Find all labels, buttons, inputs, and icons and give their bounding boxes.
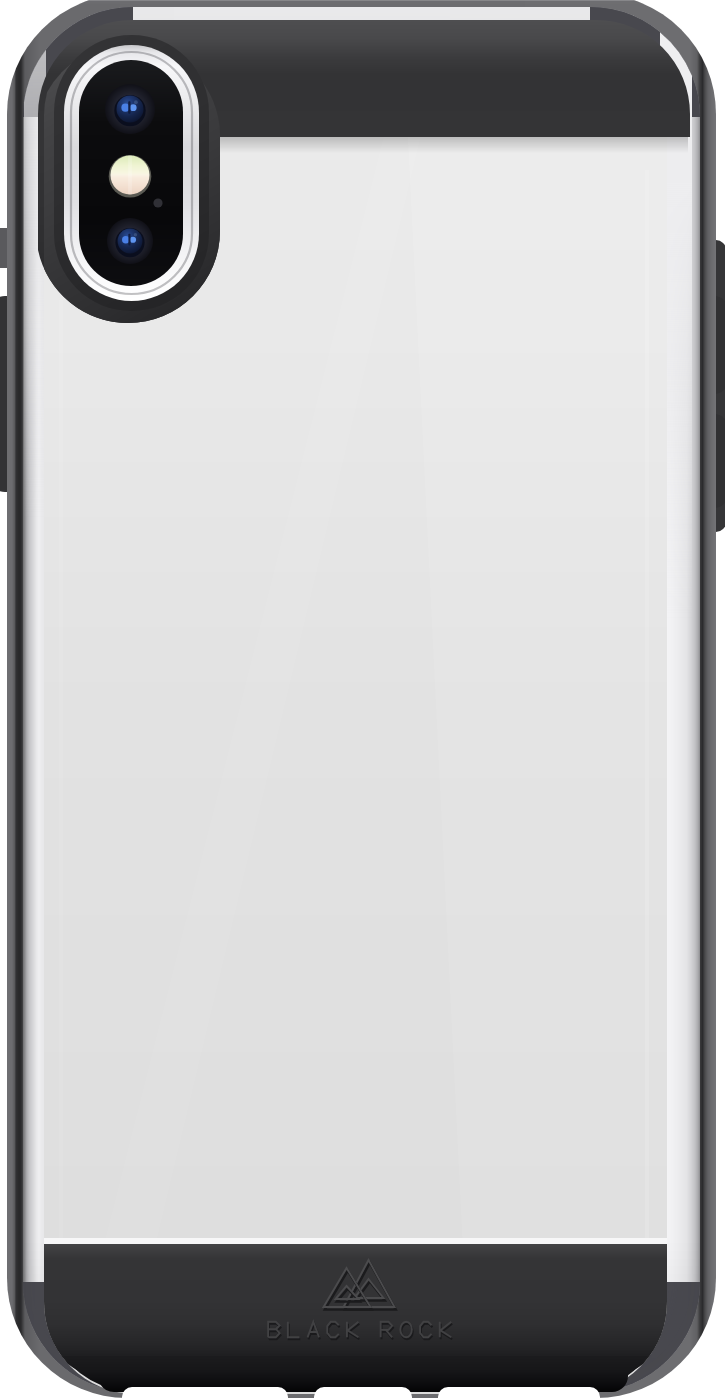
button[interactable]: Black Rock Air Robust protective phone c… bbox=[0, 0, 725, 1400]
